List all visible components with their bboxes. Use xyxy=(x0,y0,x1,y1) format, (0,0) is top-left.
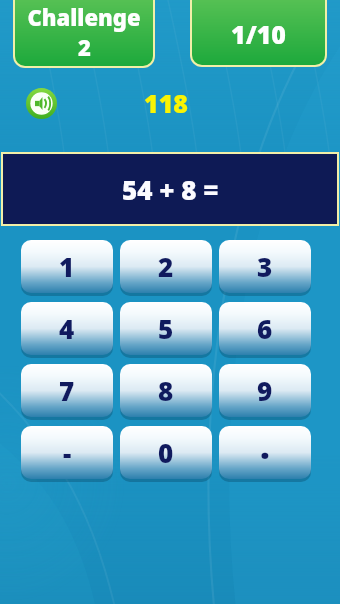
button[interactable]: 3 xyxy=(219,241,311,294)
button[interactable]: 6 xyxy=(219,303,311,356)
staticText: 5 xyxy=(158,311,174,346)
button[interactable]: 2 xyxy=(120,241,212,294)
staticText: 2 xyxy=(158,249,174,284)
staticText: 1 xyxy=(59,249,75,284)
staticText: 1/10 xyxy=(231,17,287,51)
button[interactable]: 4 xyxy=(21,303,113,356)
staticText: 6 xyxy=(257,311,273,346)
staticText: . xyxy=(260,426,270,469)
button[interactable]: 5 xyxy=(120,303,212,356)
staticText: 9 xyxy=(257,373,273,408)
staticText: 54 + 8 = xyxy=(122,172,219,207)
staticText: Challenge xyxy=(27,2,141,32)
staticText: 2 xyxy=(78,32,91,62)
button[interactable]: - xyxy=(21,427,113,480)
button[interactable]: Sound on xyxy=(26,88,57,119)
button[interactable]: 7 xyxy=(21,365,113,418)
staticText: - xyxy=(63,435,72,470)
button[interactable]: 0 xyxy=(120,427,212,480)
button[interactable]: 8 xyxy=(120,365,212,418)
staticText: 118 xyxy=(144,86,188,120)
button[interactable]: 1 xyxy=(21,241,113,294)
staticText: 7 xyxy=(59,373,75,408)
button[interactable]: . xyxy=(219,427,311,480)
staticText: 3 xyxy=(257,249,273,284)
button[interactable]: 1/10 xyxy=(192,0,325,65)
staticText: 4 xyxy=(59,311,75,346)
button[interactable]: Challenge xyxy=(15,0,153,66)
staticText: 8 xyxy=(158,373,174,408)
button[interactable]: 9 xyxy=(219,365,311,418)
staticText: 0 xyxy=(158,435,174,470)
